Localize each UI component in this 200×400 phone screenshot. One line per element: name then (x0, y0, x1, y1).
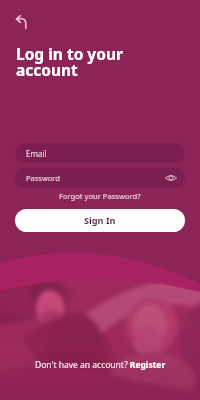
staticText: Password (26, 173, 60, 183)
button[interactable]: Don't have an account? Register (31, 356, 170, 374)
staticText: Sign In (84, 214, 116, 227)
button[interactable]: Password (15, 168, 185, 188)
button[interactable]: Show password (165, 172, 177, 184)
button[interactable]: Forgot your Password? (55, 189, 145, 203)
staticText: Forgot your Password? (59, 191, 141, 201)
button[interactable]: Sign In (15, 209, 185, 232)
staticText: Email (26, 148, 47, 159)
button[interactable]: Back (14, 15, 28, 29)
button[interactable]: Email (15, 143, 185, 163)
staticText: Don't have an account? Register (35, 359, 166, 371)
staticText: Log in to your account (16, 43, 123, 80)
